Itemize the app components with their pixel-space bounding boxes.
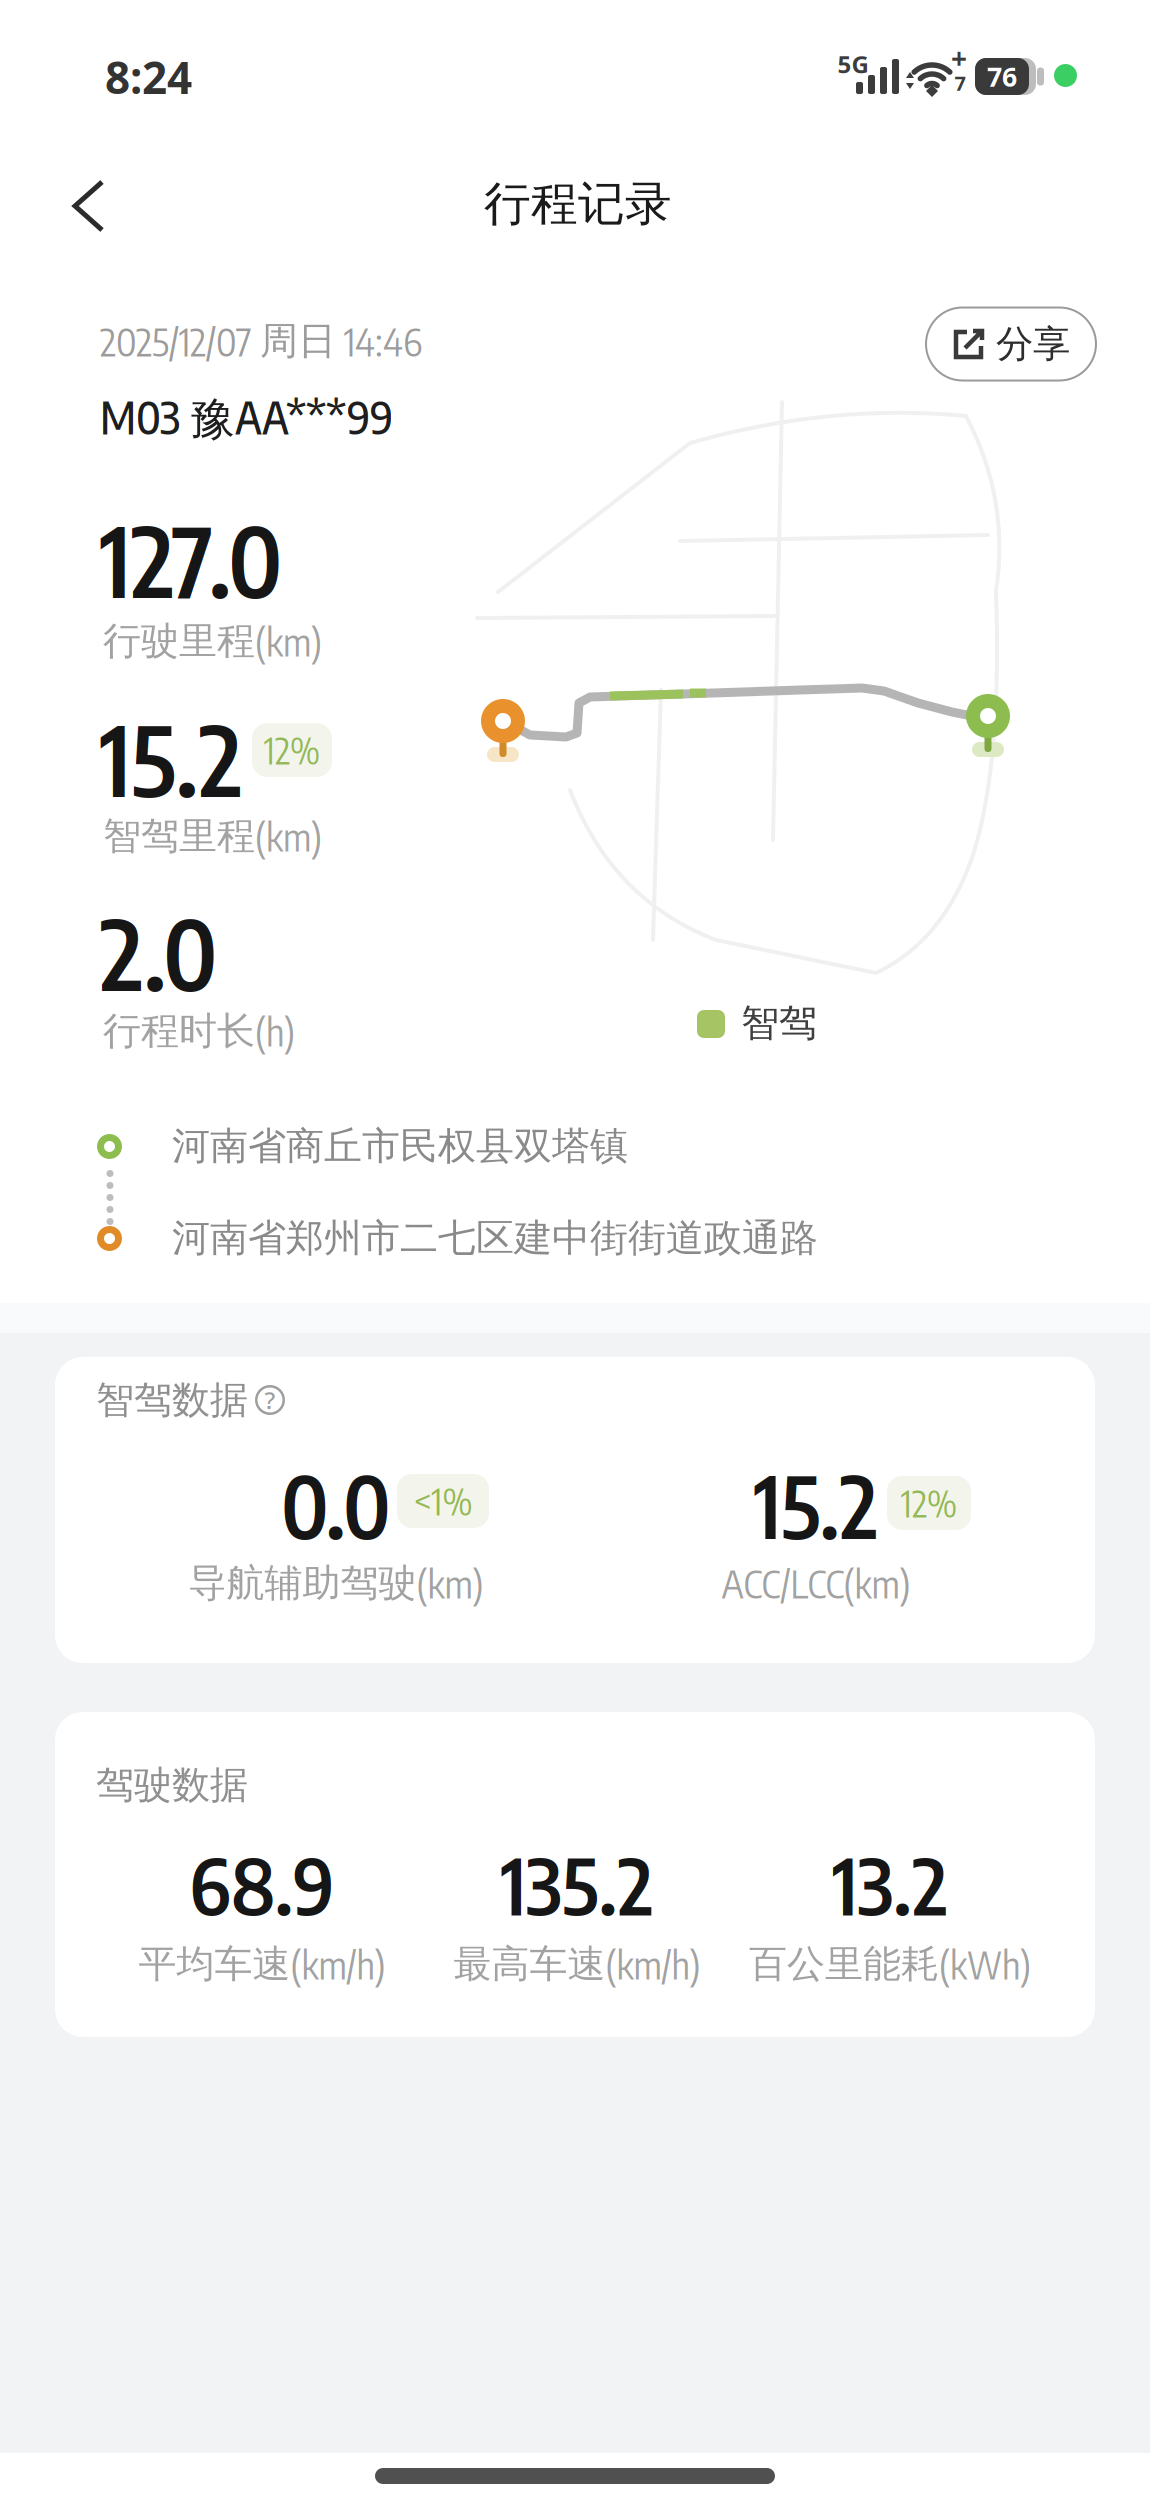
staticText: 135.2: [501, 1835, 653, 1933]
button[interactable]: 返回: [66, 175, 110, 237]
staticText: 河南省郑州市二七区建中街街道政通路: [172, 1214, 818, 1262]
staticText: 分享: [996, 321, 1070, 367]
staticText: 行程记录: [484, 175, 672, 233]
staticText: 驾驶数据: [96, 1761, 248, 1809]
staticText: 7: [954, 70, 965, 96]
staticText: ACC/LCC(km): [721, 1559, 910, 1607]
staticText: 导航辅助驾驶(km): [188, 1559, 483, 1607]
staticText: 百公里能耗(kWh): [749, 1940, 1031, 1988]
staticText: ?: [264, 1384, 275, 1416]
staticText: M03 豫AA***99: [100, 388, 393, 448]
staticText: 68.9: [189, 1835, 335, 1933]
staticText: 127.0: [100, 499, 283, 619]
staticText: 12%: [264, 727, 320, 772]
staticText: 12%: [901, 1480, 957, 1525]
staticText: 76: [987, 59, 1017, 94]
staticText: 2025/12/07 周日 14:46: [100, 317, 422, 365]
staticText: 5G: [837, 48, 868, 80]
button[interactable]: 智驾数据说明: [255, 1385, 285, 1415]
staticText: 行驶里程(km): [103, 617, 322, 665]
staticText: 河南省商丘市民权县双塔镇: [172, 1122, 628, 1170]
staticText: 平均车速(km/h): [138, 1940, 385, 1988]
staticText: 2.0: [100, 892, 218, 1012]
staticText: 最高车速(km/h): [453, 1940, 700, 1988]
staticText: 智驾: [741, 999, 817, 1047]
staticText: 15.2: [754, 1452, 878, 1557]
staticText: +: [951, 39, 967, 77]
staticText: 智驾数据: [96, 1376, 248, 1424]
staticText: 15.2: [100, 698, 242, 818]
staticText: <1%: [413, 1478, 472, 1523]
button[interactable]: 分享: [926, 307, 1096, 380]
staticText: 0.0: [281, 1452, 391, 1557]
staticText: 行程时长(h): [103, 1007, 295, 1055]
staticText: 13.2: [832, 1835, 947, 1933]
staticText: 8:24: [105, 48, 192, 106]
staticText: 智驾里程(km): [103, 812, 322, 860]
